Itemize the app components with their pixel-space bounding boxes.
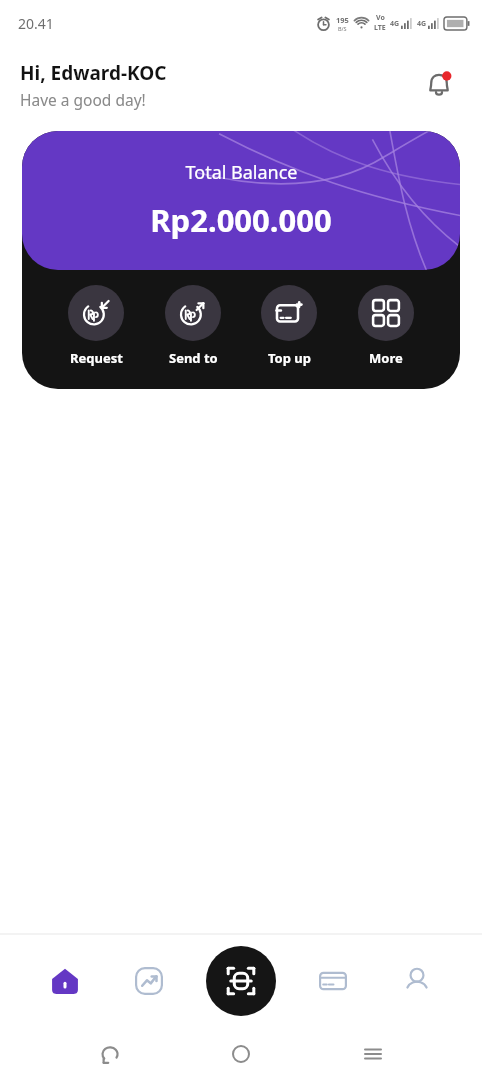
staticText: Vo [376, 13, 385, 23]
button[interactable]: Request [64, 285, 128, 367]
button[interactable]: Top up [257, 285, 321, 367]
staticText: Request [70, 349, 123, 367]
staticText: More [369, 349, 403, 367]
staticText: Total Balance [185, 160, 298, 185]
button[interactable]: More [354, 285, 418, 367]
staticText: LTE [374, 23, 386, 33]
staticText: Send to [169, 349, 218, 367]
staticText: B/S [338, 25, 347, 32]
button[interactable]: Home [37, 953, 93, 1009]
button[interactable]: Scan QR [206, 946, 276, 1016]
staticText: Hi, Edward-KOC [20, 60, 167, 86]
button[interactable]: Profile [389, 953, 445, 1009]
button[interactable]: Recents [351, 1032, 395, 1076]
button[interactable]: Statistics [121, 953, 177, 1009]
staticText: 4G [417, 19, 427, 29]
button[interactable]: Back [88, 1032, 132, 1076]
button[interactable]: Home [219, 1032, 263, 1076]
staticText: Top up [268, 349, 311, 367]
staticText: 20.41 [18, 14, 54, 33]
button[interactable]: Cards [305, 953, 361, 1009]
staticText: Have a good day! [20, 89, 146, 110]
button[interactable]: Total Balance [22, 131, 460, 270]
button[interactable]: Send to [161, 285, 225, 367]
button[interactable]: Notifications [416, 62, 462, 108]
staticText: 195 [336, 15, 349, 25]
staticText: 4G [390, 19, 400, 29]
staticText: Rp2.000.000 [150, 199, 332, 241]
